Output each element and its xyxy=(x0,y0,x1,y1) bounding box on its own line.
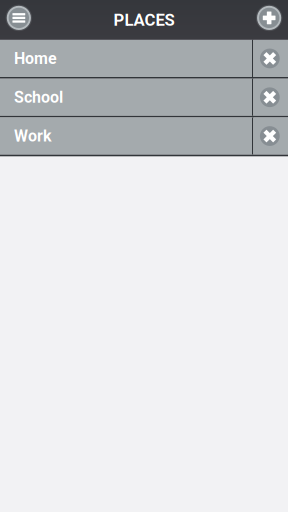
staticText: Home xyxy=(14,49,57,68)
button[interactable]: School xyxy=(0,79,252,116)
staticText: Work xyxy=(14,127,52,145)
button[interactable]: Delete Home xyxy=(253,40,288,77)
button[interactable]: Delete Work xyxy=(253,117,288,155)
button[interactable]: Menu xyxy=(0,0,38,40)
button[interactable]: Delete School xyxy=(253,79,288,116)
button[interactable]: Work xyxy=(0,117,252,155)
button[interactable]: Home xyxy=(0,40,252,77)
staticText: School xyxy=(14,88,63,107)
button[interactable]: Add place xyxy=(250,0,288,40)
staticText: PLACES xyxy=(113,10,174,30)
